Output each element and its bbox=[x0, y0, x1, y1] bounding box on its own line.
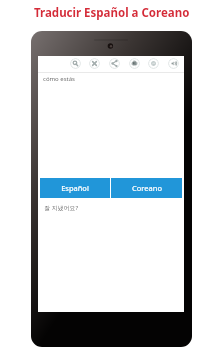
button[interactable]: Clear text bbox=[89, 58, 100, 69]
staticText: cómo estás bbox=[43, 75, 75, 83]
button[interactable]: Español bbox=[40, 178, 110, 198]
button[interactable]: Share bbox=[109, 58, 120, 69]
button[interactable]: Microphone bbox=[129, 58, 140, 69]
staticText: 잘 지냈어요? bbox=[44, 204, 79, 212]
button[interactable]: Copy bbox=[148, 58, 159, 69]
staticText: Traducir Español a Coreano bbox=[34, 5, 190, 21]
button[interactable]: Listen bbox=[168, 58, 179, 69]
staticText: Español bbox=[61, 183, 89, 193]
button[interactable]: Search bbox=[70, 58, 81, 69]
staticText: Coreano bbox=[132, 183, 162, 193]
button[interactable]: Coreano bbox=[111, 178, 182, 198]
